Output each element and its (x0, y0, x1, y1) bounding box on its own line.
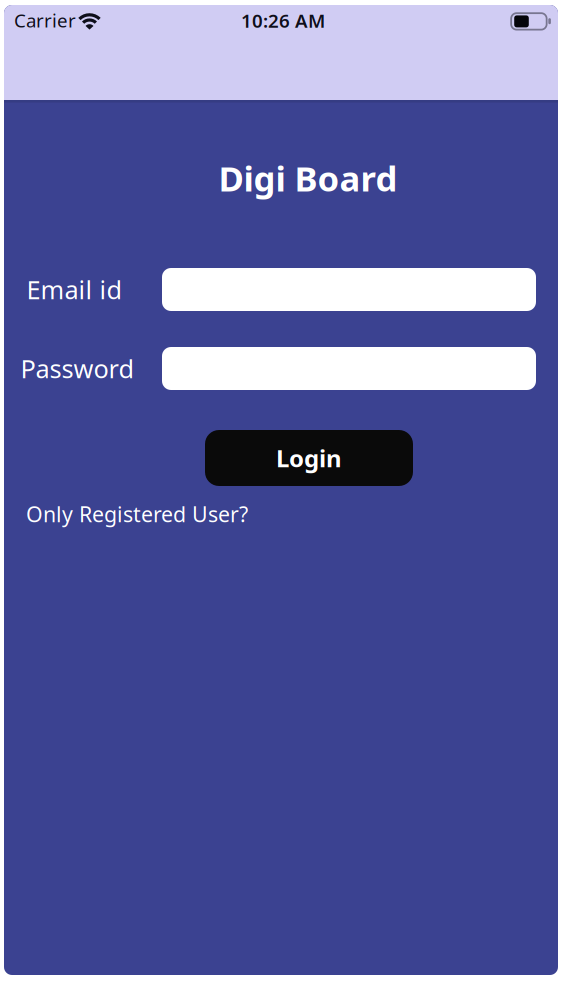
staticText: Password (20, 352, 134, 385)
staticText: 10:26 AM (241, 8, 325, 33)
staticText: Login (276, 442, 342, 474)
staticText: Digi Board (218, 155, 397, 201)
button[interactable]: Login (205, 430, 413, 486)
staticText: Email id (26, 273, 122, 306)
staticText: Only Registered User? (26, 500, 248, 528)
staticText: Carrier (14, 8, 76, 33)
